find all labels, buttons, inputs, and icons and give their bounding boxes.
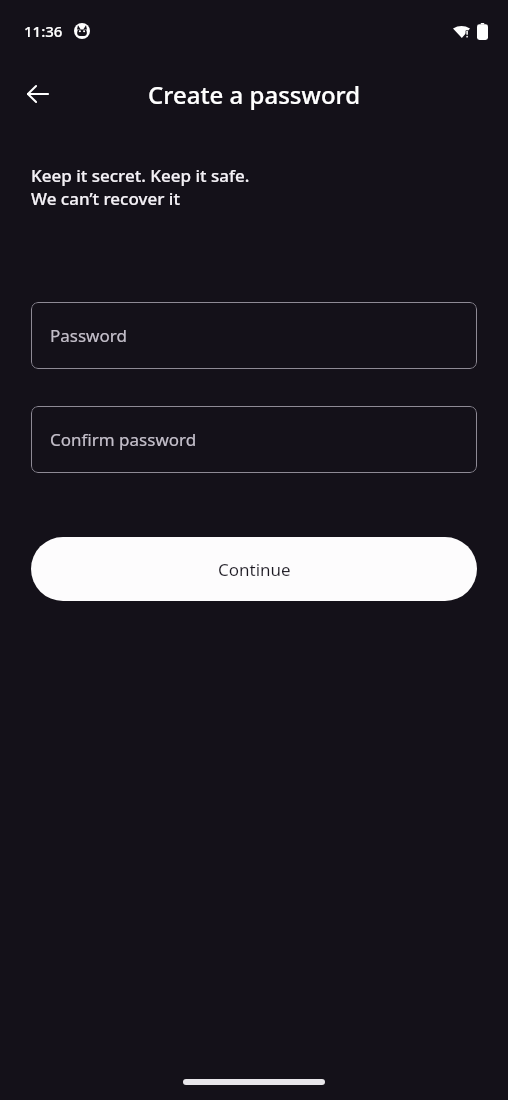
staticText: Create a password bbox=[148, 78, 361, 111]
staticText: Confirm password bbox=[50, 428, 197, 451]
staticText: Keep it secret. Keep it safe. bbox=[31, 164, 250, 187]
staticText: Continue bbox=[218, 558, 291, 581]
button[interactable]: Password bbox=[31, 302, 477, 369]
button[interactable]: Back bbox=[14, 70, 62, 118]
staticText: 11:36 bbox=[24, 21, 63, 41]
button[interactable]: Continue bbox=[31, 537, 477, 601]
staticText: Password bbox=[50, 324, 127, 347]
button[interactable]: Confirm password bbox=[31, 406, 477, 473]
staticText: We can’t recover it bbox=[31, 187, 180, 210]
